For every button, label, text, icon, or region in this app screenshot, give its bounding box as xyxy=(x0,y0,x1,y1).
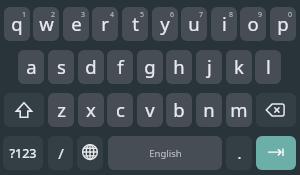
staticText: x xyxy=(86,97,96,122)
button[interactable]: k xyxy=(226,50,252,84)
button[interactable]: t xyxy=(122,7,148,41)
button[interactable]: Backspace xyxy=(256,93,296,127)
button[interactable]: u xyxy=(181,7,207,41)
button[interactable]: c xyxy=(107,93,133,127)
staticText: r xyxy=(101,11,109,36)
staticText: 8 xyxy=(229,10,234,20)
button[interactable]: / xyxy=(48,136,73,170)
staticText: 1 xyxy=(22,10,27,20)
staticText: 7 xyxy=(199,10,204,20)
staticText: i xyxy=(222,11,227,36)
button[interactable]: y xyxy=(152,7,178,41)
button[interactable]: Enter xyxy=(256,136,296,170)
staticText: 0 xyxy=(288,10,293,20)
button[interactable]: Shift xyxy=(4,93,44,127)
button[interactable]: g xyxy=(137,50,163,84)
staticText: s xyxy=(57,54,66,79)
button[interactable]: j xyxy=(196,50,222,84)
staticText: q xyxy=(11,11,23,36)
staticText: 2 xyxy=(51,10,56,20)
button[interactable]: i xyxy=(211,7,237,41)
button[interactable]: a xyxy=(18,50,44,84)
staticText: 9 xyxy=(258,10,263,20)
staticText: ?123 xyxy=(9,145,37,162)
button[interactable]: q xyxy=(4,7,30,41)
button[interactable]: o xyxy=(240,7,266,41)
staticText: b xyxy=(173,97,185,122)
button[interactable]: . xyxy=(226,136,252,170)
staticText: n xyxy=(203,97,215,122)
staticText: 4 xyxy=(110,10,115,20)
staticText: a xyxy=(26,54,37,79)
staticText: 6 xyxy=(170,10,175,20)
staticText: 5 xyxy=(140,10,145,20)
staticText: d xyxy=(85,54,97,79)
button[interactable]: f xyxy=(107,50,133,84)
staticText: English xyxy=(149,147,182,160)
staticText: / xyxy=(58,143,64,163)
staticText: k xyxy=(234,54,244,79)
staticText: l xyxy=(266,54,271,79)
button[interactable]: z xyxy=(48,93,74,127)
button[interactable]: v xyxy=(137,93,163,127)
staticText: o xyxy=(247,11,259,36)
staticText: 3 xyxy=(81,10,86,20)
staticText: z xyxy=(57,97,66,122)
staticText: y xyxy=(160,11,170,36)
button[interactable]: w xyxy=(33,7,59,41)
staticText: m xyxy=(230,97,248,122)
staticText: c xyxy=(116,97,125,122)
button[interactable]: d xyxy=(78,50,104,84)
staticText: u xyxy=(188,11,200,36)
button[interactable]: x xyxy=(78,93,104,127)
button[interactable]: p xyxy=(270,7,296,41)
button[interactable]: h xyxy=(166,50,192,84)
staticText: j xyxy=(207,54,212,79)
button[interactable]: English xyxy=(108,136,222,170)
staticText: w xyxy=(39,11,54,36)
staticText: h xyxy=(173,54,185,79)
staticText: v xyxy=(145,97,155,122)
button[interactable]: ?123 xyxy=(3,136,43,170)
button[interactable]: s xyxy=(48,50,74,84)
button[interactable]: l xyxy=(255,50,281,84)
button[interactable]: b xyxy=(166,93,192,127)
staticText: e xyxy=(71,11,82,36)
button[interactable]: m xyxy=(226,93,252,127)
button[interactable]: e xyxy=(63,7,89,41)
staticText: f xyxy=(117,54,124,79)
staticText: p xyxy=(277,11,289,36)
button[interactable]: Change language xyxy=(77,136,103,170)
staticText: . xyxy=(237,143,242,163)
staticText: t xyxy=(132,11,139,36)
staticText: g xyxy=(144,54,156,79)
button[interactable]: n xyxy=(196,93,222,127)
button[interactable]: r xyxy=(92,7,118,41)
